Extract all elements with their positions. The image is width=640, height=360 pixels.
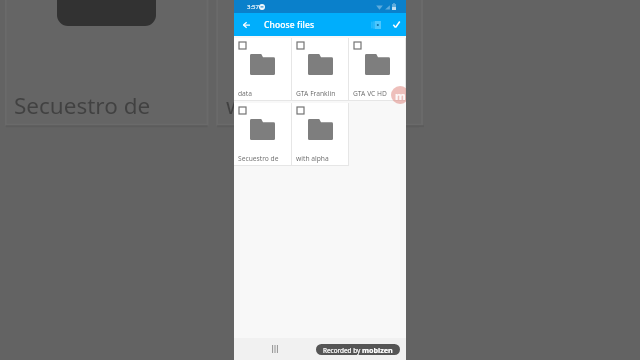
staticText: Secuestro de — [14, 90, 151, 121]
button[interactable]: GTA Franklin — [292, 38, 349, 101]
button[interactable]: Secuestro de — [234, 103, 292, 166]
button[interactable]: Confirm selection — [387, 15, 406, 34]
staticText: m — [395, 88, 406, 103]
staticText: Secuestro de — [238, 154, 279, 163]
staticText: data — [238, 89, 253, 98]
button[interactable]: Recent apps — [268, 342, 282, 356]
button[interactable]: Select all — [366, 15, 385, 34]
button[interactable]: Mobizen recorder — [391, 86, 406, 104]
staticText: GTA VC HD — [353, 89, 387, 98]
staticText: 3:57 — [247, 3, 259, 11]
button[interactable]: GTA VC HD — [349, 38, 406, 101]
staticText: GTA Franklin — [296, 89, 336, 98]
button[interactable]: data — [234, 38, 292, 101]
staticText: mobizen — [362, 345, 393, 355]
button[interactable]: Back — [237, 16, 255, 34]
staticText: with alpha — [296, 154, 329, 163]
staticText: Choose files — [264, 19, 315, 31]
staticText: Recorded by — [323, 346, 362, 355]
staticText: w — [226, 90, 244, 121]
button[interactable]: Recorded by mobizen — [316, 344, 400, 355]
button[interactable]: with alpha — [292, 103, 349, 166]
